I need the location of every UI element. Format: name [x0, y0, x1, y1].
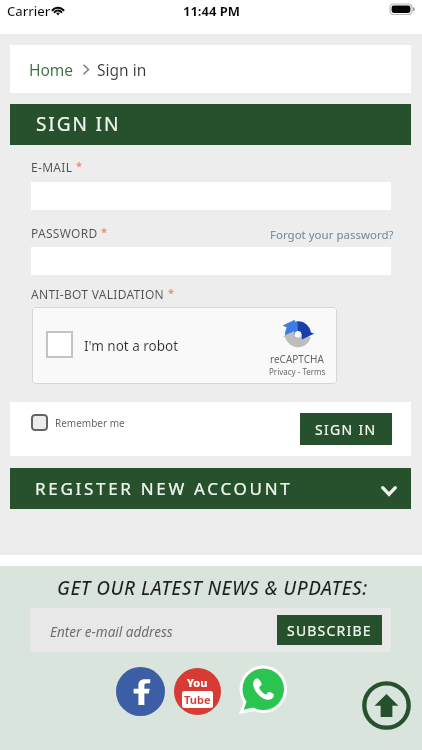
- button[interactable]: YouTube: [174, 668, 221, 715]
- staticText: Remember me: [55, 416, 125, 430]
- button[interactable]: Home: [29, 59, 74, 80]
- staticText: I'm not a robot: [84, 337, 179, 355]
- staticText: Privacy - Terms: [269, 366, 326, 377]
- staticText: Enter e-mail address: [50, 623, 173, 641]
- button[interactable]: Facebook: [116, 667, 165, 716]
- staticText: ANTI-BOT VALIDATION: [31, 286, 165, 302]
- staticText: Forgot your password?: [270, 227, 394, 243]
- staticText: *: [76, 158, 83, 173]
- staticText: SIGN IN: [36, 111, 121, 137]
- staticText: *: [101, 224, 108, 239]
- staticText: SUBSCRIBE: [287, 621, 372, 640]
- button[interactable]: SIGN IN: [10, 104, 411, 145]
- staticText: reCAPTCHA: [270, 352, 324, 366]
- staticText: E-MAIL: [31, 159, 73, 175]
- staticText: Carrier: [7, 2, 51, 20]
- staticText: 11:44 PM: [183, 2, 241, 20]
- staticText: Tube: [184, 692, 211, 707]
- staticText: REGISTER NEW ACCOUNT: [35, 477, 293, 500]
- button[interactable]: REGISTER NEW ACCOUNT: [10, 468, 411, 509]
- staticText: *: [168, 285, 175, 300]
- button[interactable]: Enter e-mail address: [30, 608, 391, 652]
- button[interactable]: Remember me: [31, 414, 125, 431]
- staticText: Sign in: [97, 59, 147, 80]
- button[interactable]: I'm not a robot: [32, 307, 337, 384]
- button[interactable]: Scroll to top: [361, 680, 412, 731]
- staticText: You: [187, 675, 208, 690]
- button[interactable]: Forgot your password?: [270, 227, 394, 243]
- button[interactable]: WhatsApp: [237, 666, 287, 716]
- button[interactable]: SUBSCRIBE: [277, 615, 382, 645]
- staticText: PASSWORD: [31, 225, 98, 241]
- staticText: GET OUR LATEST NEWS & UPDATES:: [57, 575, 368, 601]
- button[interactable]: SIGN IN: [300, 413, 392, 445]
- staticText: SIGN IN: [315, 420, 377, 439]
- staticText: Home: [29, 59, 74, 80]
